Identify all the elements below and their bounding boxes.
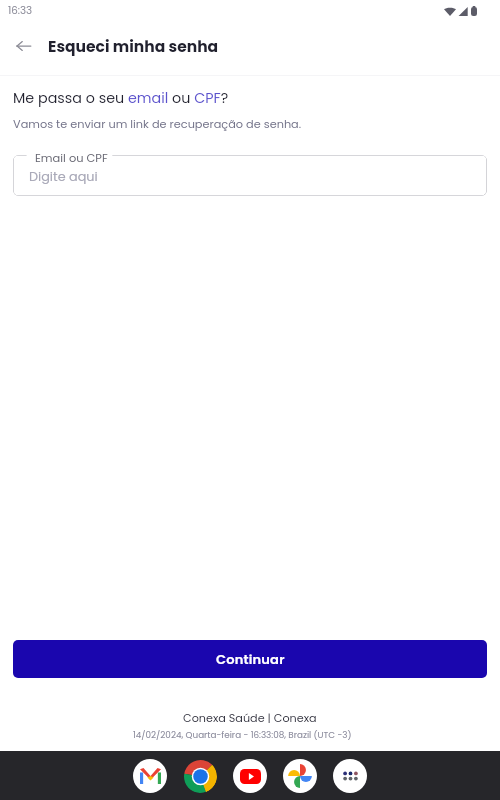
button[interactable]: Photos: [283, 759, 317, 793]
button[interactable]: Digite aqui: [13, 155, 487, 196]
button[interactable]: Chrome: [183, 759, 217, 793]
staticText: 16:33: [8, 3, 33, 17]
staticText: Digite aqui: [29, 168, 98, 186]
button[interactable]: Gmail: [133, 759, 167, 793]
button[interactable]: All apps: [333, 759, 367, 793]
button[interactable]: Continuar: [13, 640, 487, 678]
button[interactable]: YouTube: [233, 759, 267, 793]
staticText: Esqueci minha senha: [48, 36, 219, 58]
staticText: Continuar: [216, 650, 285, 668]
staticText: Vamos te enviar um link de recuperação d…: [13, 116, 302, 132]
staticText: Me passa o seu email ou CPF?: [13, 88, 229, 108]
staticText: Conexa Saúde | Conexa: [183, 710, 317, 726]
staticText: 14/02/2024, Quarta-feira - 16:33:08, Bra…: [133, 729, 352, 741]
staticText: Email ou CPF: [35, 150, 108, 166]
button[interactable]: Back: [6, 29, 40, 63]
